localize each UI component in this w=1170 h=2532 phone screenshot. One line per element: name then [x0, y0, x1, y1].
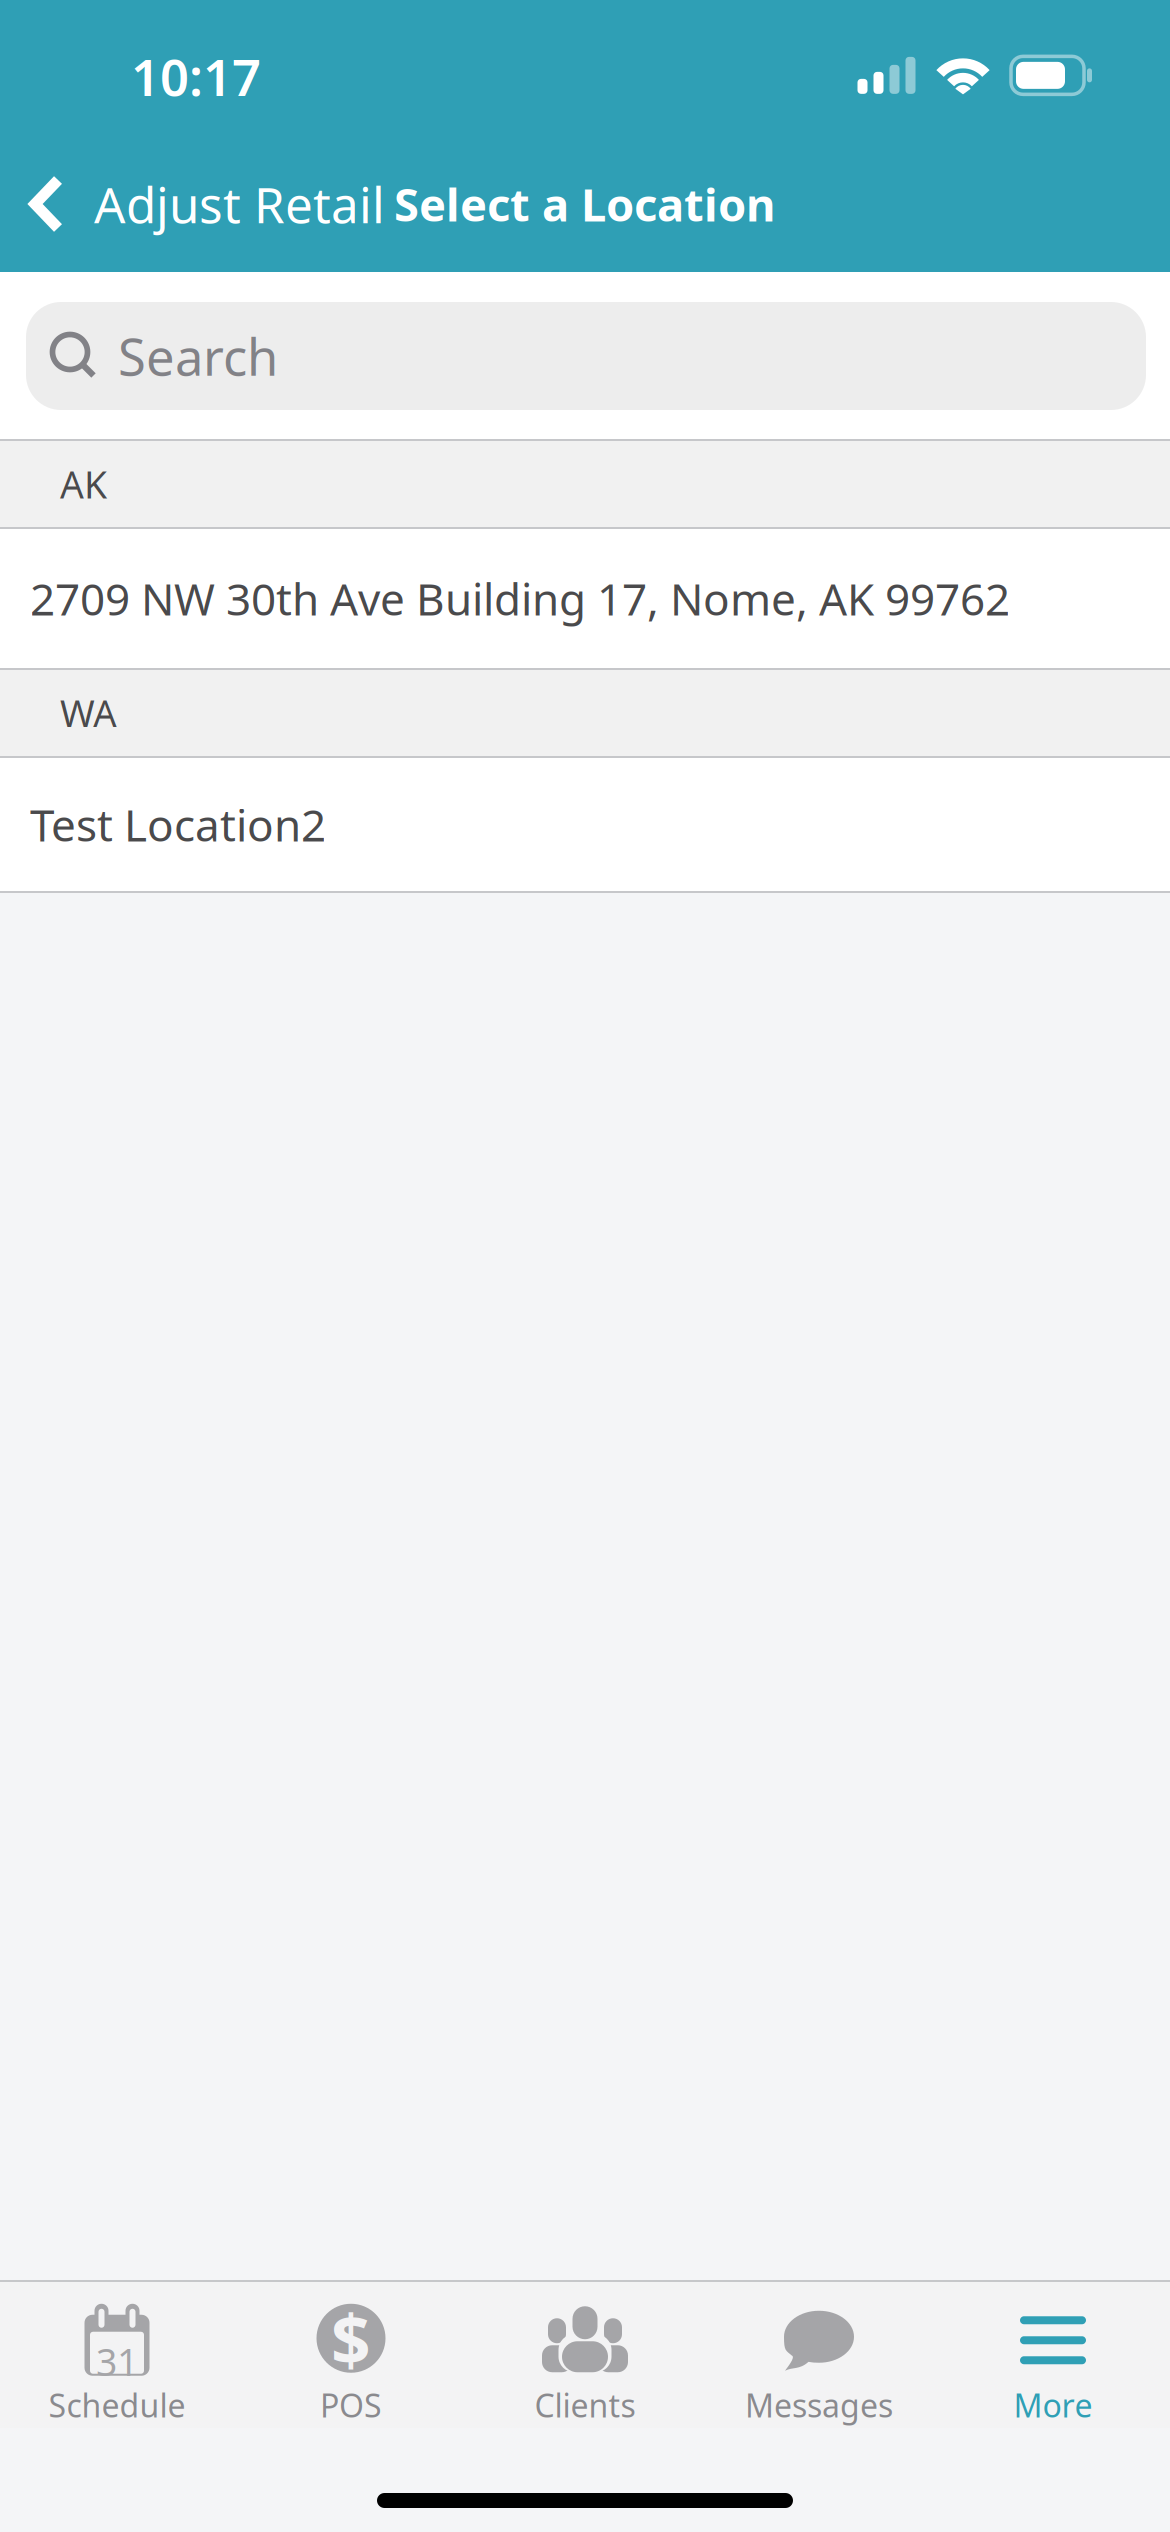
button[interactable]: Search: [26, 302, 1146, 410]
staticText: Schedule: [48, 2384, 185, 2426]
staticText: Messages: [745, 2384, 893, 2426]
staticText: Select a Location: [394, 174, 775, 234]
staticText: More: [1013, 2384, 1092, 2426]
staticText: Clients: [534, 2384, 635, 2426]
button[interactable]: $: [234, 2282, 468, 2428]
button[interactable]: More: [936, 2282, 1170, 2428]
button[interactable]: Test Location2: [0, 758, 1170, 891]
staticText: WA: [60, 688, 117, 738]
button[interactable]: Adjust Retail: [0, 152, 393, 256]
staticText: Adjust Retail: [94, 171, 385, 237]
button[interactable]: 2709 NW 30th Ave Building 17, Nome, AK 9…: [0, 529, 1170, 668]
staticText: POS: [320, 2384, 382, 2426]
staticText: AK: [60, 459, 107, 509]
staticText: Test Location2: [30, 795, 326, 854]
staticText: 10:17: [131, 43, 261, 110]
staticText: Search: [118, 322, 278, 390]
button[interactable]: Clients: [468, 2282, 702, 2428]
button[interactable]: Messages: [702, 2282, 936, 2428]
staticText: 2709 NW 30th Ave Building 17, Nome, AK 9…: [30, 569, 1010, 628]
button[interactable]: 31: [0, 2282, 234, 2428]
staticText: 31: [96, 2337, 138, 2386]
staticText: $: [331, 2292, 371, 2384]
